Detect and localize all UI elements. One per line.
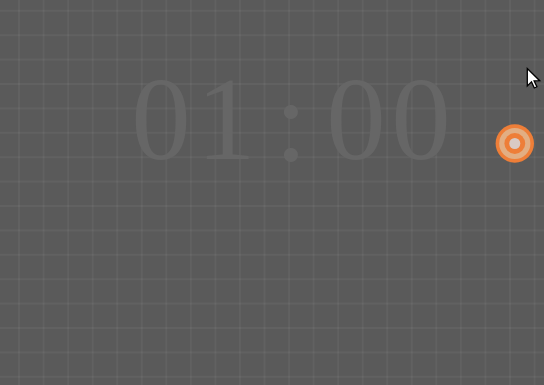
- staticText: 0: [131, 53, 191, 185]
- staticText: :: [274, 54, 308, 186]
- staticText: 0: [326, 53, 386, 185]
- button[interactable]: Record: [495, 124, 536, 165]
- staticText: 0: [391, 53, 451, 185]
- staticText: 1: [196, 53, 256, 185]
